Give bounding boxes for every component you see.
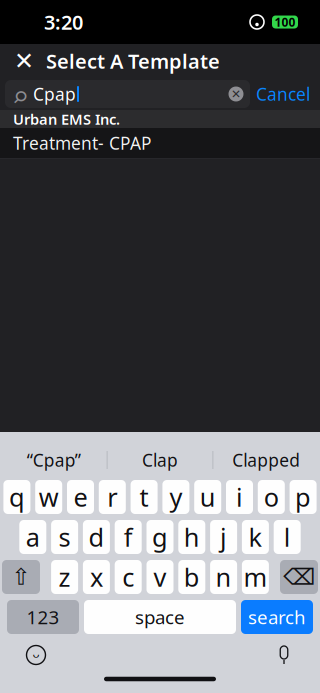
button[interactable]: search	[241, 600, 313, 634]
button[interactable]: o	[258, 480, 285, 514]
staticText: x	[90, 560, 103, 594]
staticText: h	[184, 520, 200, 554]
button[interactable]: Clear text	[222, 80, 250, 108]
staticText: s	[59, 520, 71, 554]
staticText: search	[248, 605, 306, 629]
staticText: f	[124, 520, 133, 554]
button[interactable]: Delete	[280, 560, 318, 594]
staticText: g	[152, 520, 168, 554]
button[interactable]: g	[146, 520, 173, 554]
button[interactable]: Clapped	[213, 445, 319, 475]
staticText: n	[216, 560, 232, 594]
staticText: z	[59, 560, 71, 594]
button[interactable]: Emoji	[14, 637, 58, 673]
staticText: Clapped	[232, 448, 300, 471]
staticText: i	[236, 480, 243, 514]
button[interactable]: Cancel	[250, 79, 316, 109]
button[interactable]: space	[84, 600, 236, 634]
staticText: b	[184, 560, 200, 594]
button[interactable]: q	[3, 480, 30, 514]
staticText: Treatment- CPAP	[13, 131, 151, 154]
staticText: Urban EMS Inc.	[13, 109, 120, 129]
staticText: 3:20	[44, 9, 83, 35]
button[interactable]: “Cpap”	[1, 445, 107, 475]
staticText: ✕	[231, 87, 241, 101]
button[interactable]: b	[178, 560, 205, 594]
staticText: p	[295, 480, 311, 514]
button[interactable]: Shift	[2, 560, 40, 594]
staticText: ⌕	[13, 71, 27, 117]
staticText: Clap	[142, 448, 178, 471]
button[interactable]: x	[83, 560, 110, 594]
button[interactable]: e	[67, 480, 94, 514]
button[interactable]: m	[242, 560, 269, 594]
button[interactable]: h	[178, 520, 205, 554]
staticText: d	[88, 520, 104, 554]
button[interactable]: n	[210, 560, 237, 594]
button[interactable]: Clap	[107, 445, 212, 475]
staticText: “Cpap”	[27, 448, 81, 471]
staticText: ⌫	[283, 564, 315, 590]
button[interactable]: i	[226, 480, 253, 514]
button[interactable]: s	[51, 520, 78, 554]
staticText: a	[26, 520, 40, 554]
staticText: ᵕ	[32, 644, 39, 667]
staticText: Select A Template	[46, 48, 220, 74]
button[interactable]: d	[83, 520, 110, 554]
button[interactable]: j	[210, 520, 237, 554]
button[interactable]: f	[115, 520, 142, 554]
button[interactable]: p	[290, 480, 317, 514]
staticText: Cpap	[33, 82, 76, 105]
staticText: ⇧	[11, 564, 30, 590]
button[interactable]: y	[162, 480, 189, 514]
staticText: v	[153, 560, 166, 594]
button[interactable]: r	[99, 480, 126, 514]
button[interactable]: c	[115, 560, 142, 594]
button[interactable]: z	[51, 560, 78, 594]
staticText: w	[39, 480, 59, 514]
button[interactable]: w	[35, 480, 62, 514]
staticText: r	[107, 480, 117, 514]
button[interactable]: 123	[7, 600, 79, 634]
staticText: Cancel	[256, 82, 310, 105]
staticText: t	[140, 480, 149, 514]
staticText: ✕	[14, 47, 34, 75]
staticText: q	[9, 480, 25, 514]
staticText: e	[73, 480, 87, 514]
staticText: o	[264, 480, 279, 514]
staticText: k	[248, 520, 262, 554]
staticText: u	[200, 480, 216, 514]
button[interactable]: Close	[2, 44, 46, 78]
staticText: j	[220, 520, 227, 554]
staticText: y	[169, 480, 182, 514]
staticText: m	[243, 560, 267, 594]
button[interactable]: k	[242, 520, 269, 554]
button[interactable]: v	[146, 560, 173, 594]
button[interactable]: l	[274, 520, 301, 554]
button[interactable]: a	[19, 520, 46, 554]
button[interactable]: Dictation	[262, 637, 306, 673]
button[interactable]: t	[131, 480, 158, 514]
button[interactable]: u	[194, 480, 221, 514]
button[interactable]: Treatment- CPAP	[0, 128, 320, 158]
staticText: c	[122, 560, 134, 594]
staticText: 100	[274, 14, 295, 30]
staticText: 123	[26, 605, 59, 629]
staticText: space	[135, 605, 185, 629]
staticText: l	[284, 520, 291, 554]
